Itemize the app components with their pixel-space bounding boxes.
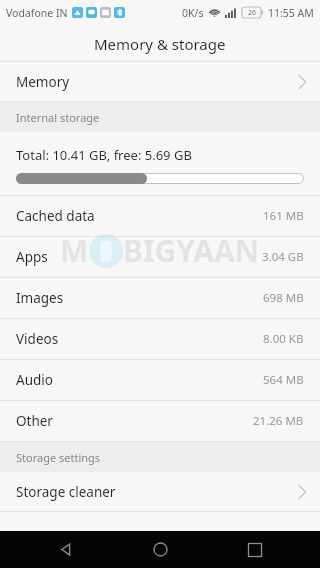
- button[interactable]: Apps: [0, 237, 320, 278]
- staticText: Other: [16, 412, 53, 430]
- staticText: Images: [16, 289, 64, 307]
- staticText: 11:55 AM: [268, 6, 314, 20]
- staticText: BIGYAAN: [123, 230, 260, 271]
- staticText: Total: 10.41 GB, free: 5.69 GB: [16, 146, 192, 164]
- staticText: 3.04 GB: [262, 249, 304, 265]
- button[interactable]: Audio: [0, 360, 320, 401]
- staticText: Storage settings: [16, 450, 101, 465]
- button[interactable]: Home: [130, 531, 190, 568]
- staticText: Storage cleaner: [16, 483, 116, 501]
- staticText: Videos: [16, 330, 59, 348]
- button[interactable]: Memory: [0, 62, 320, 102]
- staticText: 698 MB: [263, 290, 304, 306]
- button[interactable]: Cached data: [0, 196, 320, 237]
- staticText: 8.00 KB: [263, 331, 304, 347]
- staticText: Vodafone IN: [6, 6, 68, 20]
- button[interactable]: Back: [35, 531, 95, 568]
- staticText: Memory & storage: [94, 34, 226, 54]
- staticText: Apps: [16, 248, 48, 266]
- staticText: Cached data: [16, 207, 95, 225]
- button[interactable]: Videos: [0, 319, 320, 360]
- staticText: 0K/s: [182, 6, 204, 20]
- staticText: 161 MB: [263, 208, 304, 224]
- button[interactable]: Other: [0, 401, 320, 442]
- button[interactable]: Images: [0, 278, 320, 319]
- staticText: 564 MB: [263, 372, 304, 388]
- staticText: Internal storage: [16, 110, 100, 125]
- staticText: M: [60, 230, 89, 271]
- button[interactable]: Recent apps: [225, 531, 285, 568]
- staticText: Memory: [16, 73, 70, 91]
- staticText: 21.26 MB: [253, 413, 304, 429]
- button[interactable]: Storage cleaner: [0, 472, 320, 512]
- staticText: 26: [248, 8, 257, 18]
- staticText: Audio: [16, 371, 53, 389]
